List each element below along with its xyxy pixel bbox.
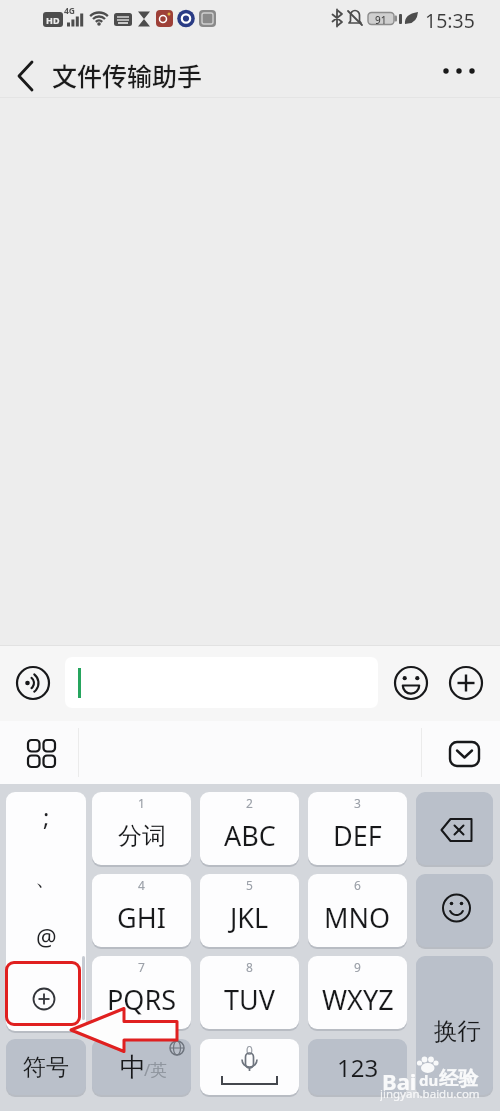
staticText: JKL (230, 899, 269, 936)
button[interactable]: 0 (200, 1039, 299, 1095)
staticText: 4 (138, 877, 145, 893)
button[interactable]: 2 (200, 792, 299, 865)
staticText: TUV (224, 981, 275, 1018)
staticText: 6 (354, 877, 361, 893)
staticText: du (419, 1070, 439, 1090)
button[interactable] (24, 979, 64, 1019)
staticText: DEF (333, 817, 382, 854)
staticText: 91 (375, 13, 387, 24)
staticText: 123 (337, 1051, 379, 1084)
staticText: 分词 (118, 821, 166, 851)
staticText: 9 (354, 959, 361, 975)
button[interactable]: 7 (92, 956, 191, 1029)
staticText: 5 (246, 877, 253, 893)
button[interactable] (14, 664, 52, 702)
button[interactable] (444, 736, 486, 774)
staticText: 0 (246, 1042, 253, 1058)
staticText: ABC (224, 817, 276, 854)
staticText: 7 (138, 959, 145, 975)
staticText: jingyan.baidu.com (380, 1086, 480, 1101)
staticText: 2 (246, 795, 253, 811)
button[interactable]: 3 (308, 792, 407, 865)
button[interactable]: 6 (308, 874, 407, 947)
staticText: 、 (35, 864, 57, 892)
button[interactable] (416, 792, 493, 865)
button[interactable] (434, 54, 486, 90)
staticText: HD (46, 14, 60, 26)
staticText: 中 (120, 1051, 146, 1084)
button[interactable]: 5 (200, 874, 299, 947)
button[interactable] (6, 792, 86, 1031)
button[interactable] (65, 657, 378, 708)
staticText: Bai (382, 1066, 417, 1092)
staticText: 4G (64, 5, 76, 15)
staticText: 8 (246, 959, 253, 975)
staticText: WXYZ (322, 981, 394, 1018)
button[interactable]: 1 (92, 792, 191, 865)
staticText: 换行 (434, 1016, 481, 1046)
button[interactable]: 换行 (416, 956, 493, 1095)
button[interactable] (416, 874, 493, 947)
staticText: 15:35 (425, 7, 475, 29)
staticText: 经验 (439, 1066, 478, 1091)
staticText: MNO (324, 899, 391, 936)
staticText: 符号 (23, 1053, 69, 1082)
button[interactable]: 8 (200, 956, 299, 1029)
button[interactable] (392, 664, 430, 702)
button[interactable] (447, 664, 485, 702)
button[interactable]: 中 (92, 1039, 191, 1095)
button[interactable] (10, 58, 46, 94)
staticText: ; (43, 800, 50, 833)
button[interactable]: 9 (308, 956, 407, 1029)
staticText: @ (36, 921, 57, 952)
button[interactable] (22, 734, 62, 774)
staticText: 3 (354, 795, 361, 811)
button[interactable]: 4 (92, 874, 191, 947)
button[interactable]: 123 (308, 1039, 407, 1095)
button[interactable]: 符号 (6, 1039, 86, 1095)
staticText: 文件传输助手 (52, 57, 203, 90)
staticText: /英 (144, 1058, 168, 1081)
staticText: 1 (138, 795, 145, 811)
staticText: PQRS (107, 981, 177, 1018)
staticText: GHI (117, 899, 166, 936)
